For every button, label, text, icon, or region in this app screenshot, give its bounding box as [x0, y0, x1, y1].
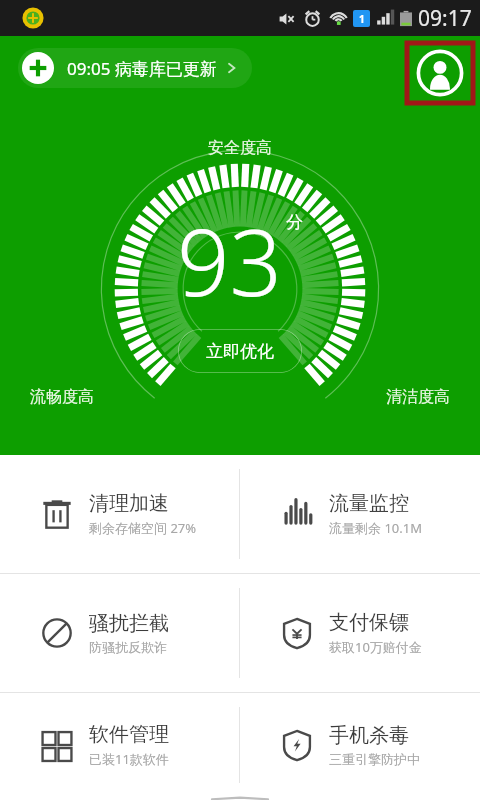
staticText: 手机杀毒	[329, 723, 409, 748]
staticText: 流量剩余 10.1M	[329, 519, 422, 537]
button[interactable]: 流量监控	[240, 455, 480, 573]
staticText: 93	[177, 198, 283, 323]
staticText: 安全度高	[208, 138, 272, 158]
staticText: 获取10万赔付金	[329, 638, 422, 656]
staticText: 09:05 病毒库已更新	[67, 57, 217, 80]
button[interactable]: 清理加速	[0, 455, 239, 573]
button[interactable]: 软件管理	[0, 693, 239, 797]
staticText: 清理加速	[89, 491, 169, 516]
staticText: 软件管理	[89, 722, 169, 747]
button[interactable]: 支付保镖	[240, 574, 480, 692]
staticText: 分	[286, 212, 303, 233]
staticText: 骚扰拦截	[89, 611, 169, 636]
staticText: 清洁度高	[386, 387, 450, 407]
staticText: 立即优化	[206, 341, 274, 362]
button[interactable]: Account	[407, 43, 473, 103]
staticText: 流量监控	[329, 491, 409, 516]
staticText: 已装11款软件	[89, 750, 169, 768]
button[interactable]: 骚扰拦截	[0, 574, 239, 692]
staticText: 流畅度高	[30, 387, 94, 407]
staticText: 三重引擎防护中	[329, 751, 420, 767]
staticText: 支付保镖	[329, 610, 409, 635]
button[interactable]: 09:05 病毒库已更新	[18, 48, 252, 88]
staticText: 09:17	[418, 4, 472, 33]
button[interactable]: 立即优化	[178, 329, 302, 373]
staticText: 1	[359, 12, 365, 26]
button[interactable]: 手机杀毒	[240, 693, 480, 797]
staticText: 剩余存储空间 27%	[89, 519, 197, 537]
staticText: 防骚扰反欺诈	[89, 639, 167, 655]
